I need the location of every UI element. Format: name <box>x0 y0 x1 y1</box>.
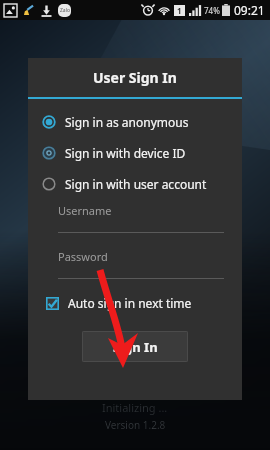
staticText: 09:21 <box>234 2 265 18</box>
button[interactable]: Auto sign in next time <box>46 295 192 311</box>
staticText: Password <box>58 249 108 264</box>
staticText: Version 1.2.8 <box>105 418 166 432</box>
staticText: Auto sign in next time <box>68 295 192 311</box>
staticText: Sign In <box>113 338 158 356</box>
staticText: Username <box>58 203 112 218</box>
staticText: Sign in as anonymous <box>65 114 189 130</box>
staticText: 74% <box>204 5 220 16</box>
staticText: Initializing ... <box>102 400 168 415</box>
button[interactable]: Sign In <box>82 331 188 362</box>
staticText: Sign in with device ID <box>65 145 186 161</box>
button[interactable]: Sign in as anonymous <box>42 111 242 133</box>
button[interactable]: Sign in with device ID <box>42 142 242 164</box>
staticText: Zalo <box>60 7 70 14</box>
button[interactable]: Sign in with user account <box>42 173 242 195</box>
staticText: 1 <box>177 5 182 16</box>
staticText: Sign in with user account <box>65 176 207 192</box>
staticText: User Sign In <box>93 68 177 87</box>
